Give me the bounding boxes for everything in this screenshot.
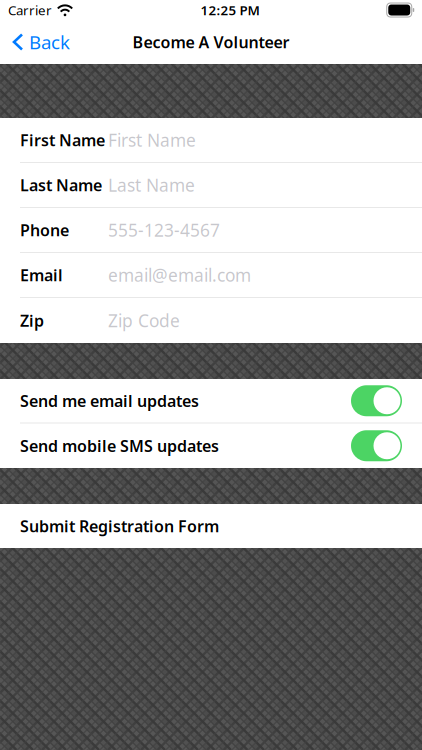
staticText: Carrier — [8, 1, 52, 19]
button[interactable]: Send mobile SMS updates — [0, 423, 422, 468]
staticText: Submit Registration Form — [20, 515, 219, 537]
staticText: Send mobile SMS updates — [20, 435, 219, 456]
staticText: First Name — [20, 129, 105, 151]
staticText: Last Name — [20, 174, 102, 196]
staticText: Email — [20, 264, 63, 286]
staticText: email@email.com — [108, 263, 251, 286]
staticText: 555-123-4567 — [108, 218, 220, 241]
staticText: Back — [29, 30, 70, 54]
staticText: Last Name — [108, 173, 195, 196]
staticText: 12:25 PM — [200, 1, 259, 19]
staticText: Become A Volunteer — [132, 31, 289, 53]
staticText: Send me email updates — [20, 390, 199, 411]
staticText: Zip — [20, 310, 44, 331]
staticText: Zip Code — [108, 309, 180, 332]
button[interactable]: Send me email updates — [0, 379, 422, 423]
staticText: Phone — [20, 219, 69, 241]
staticText: First Name — [108, 128, 196, 151]
button[interactable]: Back — [0, 20, 80, 64]
button[interactable]: Submit Registration Form — [0, 504, 422, 548]
